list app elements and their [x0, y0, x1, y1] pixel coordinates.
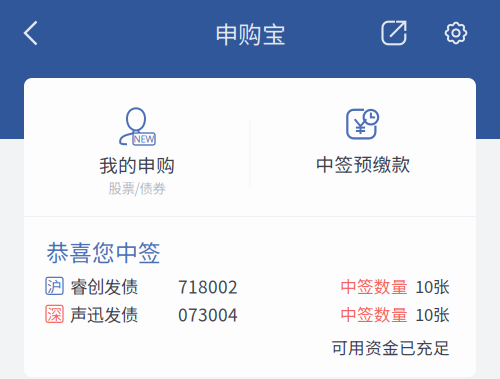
- staticText: 股票/债券: [108, 178, 165, 197]
- button[interactable]: 中签预缴款: [250, 78, 476, 216]
- staticText: 中签预缴款: [315, 150, 410, 177]
- staticText: 中签数量: [340, 302, 408, 326]
- staticText: 073004: [178, 301, 238, 326]
- button[interactable]: Back: [0, 0, 62, 66]
- staticText: 申购宝: [214, 16, 286, 50]
- button[interactable]: NEW: [24, 78, 250, 216]
- staticText: 声迅发债: [70, 301, 138, 326]
- staticText: NEW: [133, 133, 154, 145]
- button[interactable]: Settings: [425, 0, 487, 66]
- staticText: 10张: [415, 274, 450, 298]
- staticText: 我的申购: [99, 151, 175, 178]
- staticText: 沪: [47, 275, 62, 296]
- staticText: 睿创发债: [70, 273, 138, 298]
- staticText: 深: [47, 303, 62, 324]
- staticText: 10张: [415, 302, 450, 326]
- button[interactable]: Share: [363, 0, 425, 66]
- staticText: 中签数量: [340, 274, 408, 298]
- staticText: 718002: [178, 273, 238, 298]
- staticText: 可用资金已充足: [331, 335, 450, 359]
- staticText: 恭喜您中签: [46, 235, 161, 268]
